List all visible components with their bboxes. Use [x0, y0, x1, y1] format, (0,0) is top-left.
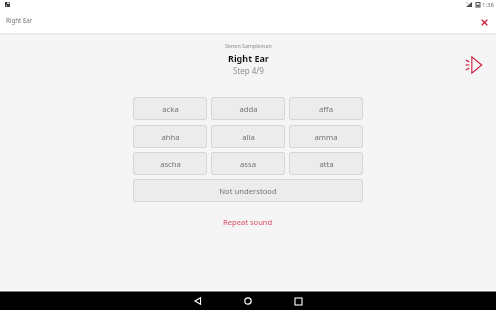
staticText: alla [242, 132, 255, 142]
staticText: adda [239, 104, 258, 114]
button[interactable]: atta [289, 152, 363, 175]
staticText: affa [319, 104, 333, 114]
button[interactable]: Home [223, 292, 273, 310]
staticText: Right Ear [6, 16, 33, 24]
button[interactable]: alla [211, 125, 285, 148]
button[interactable]: ahha [133, 125, 207, 148]
staticText: Not understood [219, 186, 277, 196]
staticText: amma [314, 132, 338, 142]
staticText: 1:38 [482, 1, 494, 9]
button[interactable]: Back [173, 292, 223, 310]
button[interactable]: Not understood [133, 179, 363, 202]
staticText: Repeat sound [223, 217, 273, 227]
button[interactable]: adda [211, 97, 285, 120]
button[interactable]: ascha [133, 152, 207, 175]
staticText: Right Ear [228, 52, 269, 64]
staticText: acka [162, 104, 179, 114]
staticText: Simon Sampleman [225, 42, 272, 49]
staticText: ascha [160, 159, 181, 169]
button[interactable]: Recent apps [273, 292, 323, 310]
button[interactable]: acka [133, 97, 207, 120]
button[interactable]: affa [289, 97, 363, 120]
button[interactable]: Repeat sound [213, 214, 283, 230]
staticText: Step 4/9 [233, 65, 264, 76]
staticText: ahha [161, 132, 180, 142]
button[interactable]: assa [211, 152, 285, 175]
button[interactable]: Close [476, 14, 493, 31]
button[interactable]: amma [289, 125, 363, 148]
button[interactable]: Play sound [460, 51, 488, 79]
staticText: assa [240, 159, 256, 169]
staticText: atta [319, 159, 334, 169]
